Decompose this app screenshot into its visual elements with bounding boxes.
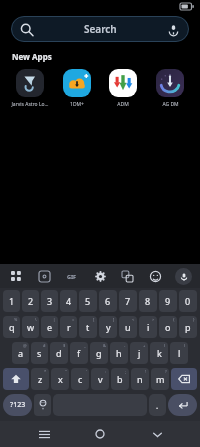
button[interactable]: Recents xyxy=(31,421,57,447)
button[interactable]: _ xyxy=(70,342,88,364)
staticText: f xyxy=(77,347,81,359)
button[interactable]: 1 xyxy=(3,290,20,312)
button[interactable]: ; xyxy=(111,368,129,390)
staticText: " xyxy=(65,369,67,374)
staticText: { xyxy=(173,317,175,322)
staticText: GIF xyxy=(67,273,77,280)
staticText: ) xyxy=(184,343,186,348)
button[interactable]: Home xyxy=(87,421,113,447)
staticText: ' xyxy=(86,369,87,374)
staticText: l xyxy=(178,347,181,359)
button[interactable]: 7 xyxy=(119,290,137,312)
button[interactable]: Emoji xyxy=(147,268,163,284)
button[interactable]: Hide keyboard xyxy=(144,421,170,447)
button[interactable]: Enter xyxy=(168,394,197,416)
staticText: 1 xyxy=(9,295,15,307)
staticText: ; xyxy=(125,369,127,374)
button[interactable]: ' xyxy=(71,368,89,390)
button[interactable]: 0 xyxy=(179,290,197,312)
staticText: w xyxy=(27,321,35,333)
staticText: Search xyxy=(84,22,117,36)
staticText: d xyxy=(56,347,62,359)
button[interactable]: ?123 xyxy=(3,394,32,416)
staticText: % xyxy=(14,317,18,322)
button[interactable]: Backspace xyxy=(171,368,197,390)
button[interactable]: Settings xyxy=(92,268,108,284)
button[interactable]: + xyxy=(130,342,148,364)
button[interactable]: $ xyxy=(50,342,68,364)
staticText: j xyxy=(138,347,141,359)
button[interactable]: . xyxy=(149,394,166,416)
button[interactable]: 6 xyxy=(99,290,117,312)
button[interactable]: Emoji xyxy=(34,394,51,416)
button[interactable]: = xyxy=(60,316,77,338)
button[interactable]: 1DM+ xyxy=(55,67,99,110)
staticText: a xyxy=(18,347,24,359)
button[interactable]: & xyxy=(90,342,108,364)
staticText: 7 xyxy=(125,295,131,307)
button[interactable]: 8 xyxy=(139,290,157,312)
button[interactable]: 3 xyxy=(41,290,58,312)
staticText: s xyxy=(37,347,42,359)
button[interactable]: { xyxy=(159,316,177,338)
button[interactable]: : xyxy=(91,368,109,390)
button[interactable]: Jarvis Astro Lo… xyxy=(8,67,52,110)
button[interactable]: * xyxy=(31,368,49,390)
button[interactable]: } xyxy=(179,316,197,338)
other: Search xyxy=(20,23,33,36)
button[interactable]: ! xyxy=(131,368,149,390)
button[interactable]: ? xyxy=(151,368,169,390)
button[interactable]: \ xyxy=(22,316,39,338)
staticText: < xyxy=(132,317,135,322)
staticText: ] xyxy=(113,317,115,322)
staticText: ?123 xyxy=(10,400,26,410)
button[interactable]: [ xyxy=(79,316,97,338)
button[interactable]: Translate xyxy=(119,268,135,284)
staticText: 2 xyxy=(28,295,34,307)
button[interactable]: > xyxy=(139,316,157,338)
button[interactable]: @ xyxy=(12,342,29,364)
button[interactable]: GIF xyxy=(64,268,80,284)
staticText: & xyxy=(103,343,106,348)
staticText: + xyxy=(143,343,146,348)
staticText: m xyxy=(156,373,165,385)
staticText: ? xyxy=(165,369,167,374)
staticText: h xyxy=(116,347,122,359)
button[interactable]: ) xyxy=(170,342,188,364)
staticText: : xyxy=(105,369,107,374)
button[interactable]: ] xyxy=(99,316,117,338)
button[interactable]: # xyxy=(31,342,48,364)
button[interactable]: 2 xyxy=(22,290,39,312)
button[interactable]: 5 xyxy=(79,290,97,312)
button[interactable]: " xyxy=(51,368,69,390)
staticText: u xyxy=(125,321,131,333)
staticText: o xyxy=(165,321,171,333)
button[interactable]: Apps xyxy=(8,268,24,284)
staticText: } xyxy=(193,317,195,322)
button[interactable]: AG DM xyxy=(148,67,192,110)
staticText: 4 xyxy=(66,295,72,307)
button[interactable]: Shift xyxy=(3,368,29,390)
button[interactable]: 9 xyxy=(159,290,177,312)
staticText: - xyxy=(124,343,126,348)
button[interactable]: ADM xyxy=(101,67,145,110)
button[interactable]: - xyxy=(110,342,128,364)
button[interactable]: < xyxy=(119,316,137,338)
staticText: z xyxy=(38,373,43,385)
staticText: ADM xyxy=(117,101,129,108)
button[interactable]: Stickers xyxy=(36,268,52,284)
staticText: _ xyxy=(84,343,86,348)
other: Voice search xyxy=(167,23,180,36)
staticText: q xyxy=(9,321,15,333)
button[interactable]: ( xyxy=(150,342,168,364)
staticText: c xyxy=(78,373,83,385)
button[interactable]: | xyxy=(41,316,58,338)
button[interactable]: % xyxy=(3,316,20,338)
button[interactable]: Search xyxy=(11,16,189,42)
button[interactable]: 4 xyxy=(60,290,77,312)
staticText: g xyxy=(96,347,102,359)
button[interactable]: Voice input xyxy=(175,268,192,285)
staticText: 0 xyxy=(185,295,191,307)
staticText: i xyxy=(147,321,150,333)
